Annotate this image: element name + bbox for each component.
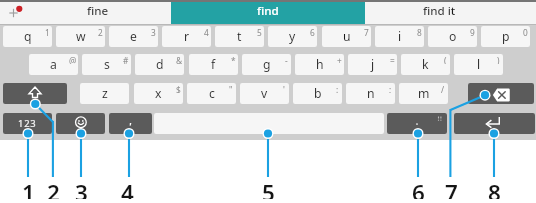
button[interactable]: u	[322, 26, 371, 47]
staticText: 8	[417, 27, 422, 36]
staticText: b	[314, 85, 322, 102]
staticText: 3	[75, 177, 88, 199]
staticText: p	[502, 28, 510, 45]
button[interactable]: fine	[25, 0, 171, 22]
button[interactable]: n	[346, 83, 395, 104]
staticText: ;	[389, 84, 392, 93]
button[interactable]: f	[189, 54, 238, 75]
staticText: f	[211, 56, 216, 73]
staticText: :	[336, 84, 339, 93]
button[interactable]: c	[187, 83, 236, 104]
staticText: 5	[257, 27, 262, 36]
staticText: u	[343, 28, 351, 45]
staticText: q	[24, 28, 32, 45]
button[interactable]: find it	[365, 0, 513, 22]
button[interactable]	[171, 2, 365, 25]
button[interactable]: m	[399, 83, 448, 104]
staticText: m	[418, 85, 430, 102]
staticText: *	[231, 55, 236, 64]
button[interactable]: d	[135, 54, 184, 75]
button[interactable]: w	[56, 26, 105, 47]
staticText: =	[390, 55, 395, 64]
button[interactable]: s	[82, 54, 131, 75]
staticText: find it	[423, 3, 456, 19]
button[interactable]: h	[295, 54, 344, 75]
button[interactable]: l	[454, 54, 503, 75]
staticText: i	[398, 28, 402, 45]
button[interactable]: i	[375, 26, 424, 47]
staticText: s	[104, 56, 110, 73]
button[interactable]: find	[171, 0, 365, 22]
staticText: y	[289, 28, 296, 45]
staticText: $	[176, 84, 181, 93]
button[interactable]: Add word	[1, 2, 27, 25]
button[interactable]: p	[481, 26, 530, 47]
staticText: 4	[121, 177, 134, 199]
staticText: d	[156, 56, 164, 73]
button[interactable]: r	[162, 26, 211, 47]
staticText: 1	[45, 27, 50, 36]
button[interactable]: x	[134, 83, 183, 104]
button[interactable]: j	[348, 54, 397, 75]
staticText: k	[422, 56, 429, 73]
staticText: w	[76, 28, 86, 45]
staticText: )	[497, 55, 500, 64]
button[interactable]: Backspace	[468, 83, 534, 104]
staticText: t	[237, 28, 242, 45]
staticText: '	[283, 84, 285, 93]
button[interactable]: Comma	[109, 113, 152, 134]
button[interactable]: Emoji	[56, 113, 105, 134]
staticText: 7	[364, 27, 369, 36]
staticText: -	[285, 55, 288, 64]
staticText: l	[477, 56, 481, 73]
staticText: x	[155, 85, 162, 102]
staticText: /	[441, 84, 445, 93]
button[interactable]: a	[29, 54, 78, 75]
button[interactable]: Shift	[3, 83, 67, 104]
staticText: 2	[47, 177, 60, 199]
button[interactable]: q	[3, 26, 52, 47]
staticText: r	[184, 28, 190, 45]
staticText: 0	[523, 27, 528, 36]
button[interactable]: v	[240, 83, 289, 104]
staticText: j	[371, 56, 375, 73]
staticText: o	[449, 28, 457, 45]
button[interactable]: e	[109, 26, 158, 47]
button[interactable]: y	[268, 26, 317, 47]
staticText: 7	[445, 177, 458, 199]
staticText: a	[50, 56, 57, 73]
staticText: e	[130, 28, 137, 45]
staticText: "	[229, 84, 233, 93]
staticText: 3	[151, 27, 156, 36]
button[interactable]: Period	[387, 113, 447, 134]
staticText: 9	[470, 27, 475, 36]
staticText: fine	[87, 3, 109, 19]
button[interactable]: Symbols	[3, 113, 52, 134]
button[interactable]: z	[80, 83, 129, 104]
button[interactable]: o	[428, 26, 477, 47]
staticText: +	[337, 55, 342, 64]
staticText: 1	[22, 177, 35, 199]
staticText: @	[69, 55, 77, 64]
staticText: g	[263, 56, 271, 73]
button[interactable]: k	[401, 54, 450, 75]
button[interactable]: b	[293, 83, 342, 104]
staticText: n	[367, 85, 375, 102]
staticText: 6	[412, 177, 425, 199]
staticText: 2	[98, 27, 103, 36]
staticText: v	[261, 85, 268, 102]
staticText: (	[444, 55, 447, 64]
staticText: &	[176, 55, 183, 64]
staticText: #	[123, 55, 129, 64]
staticText: 123	[18, 117, 37, 130]
staticText: 6	[310, 27, 315, 36]
staticText: 4	[204, 27, 209, 36]
staticText: 5	[262, 177, 275, 199]
button[interactable]: Space	[154, 113, 384, 134]
staticText: z	[102, 85, 108, 102]
button[interactable]: t	[215, 26, 264, 47]
staticText: h	[316, 56, 324, 73]
button[interactable]: g	[242, 54, 291, 75]
button[interactable]: Enter	[454, 113, 535, 134]
